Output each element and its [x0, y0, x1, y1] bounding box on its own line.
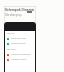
staticText: Kemarin [7, 48, 16, 51]
button[interactable]: Rapat tim pagi [7, 36, 33, 41]
button[interactable]: Diskusi desain [7, 41, 33, 46]
staticText: Rapat tim pagi [11, 37, 26, 40]
staticText: Laporan mingguan [11, 53, 31, 56]
button[interactable]: Catatan proyek [7, 57, 33, 62]
staticText: Kelompok Dinamis [5, 8, 35, 12]
staticText: Diskusi desain [11, 42, 26, 45]
staticText: Hari ini [7, 32, 15, 35]
staticText: Obrolan grup [5, 13, 22, 17]
button[interactable]: Menu [27, 10, 32, 14]
button[interactable]: Laporan mingguan [7, 52, 33, 57]
staticText: Catatan proyek [11, 58, 27, 61]
